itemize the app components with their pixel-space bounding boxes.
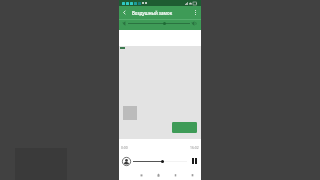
staticText: 16:02 [190,145,199,150]
button[interactable]: Account [121,156,131,166]
staticText: Воздушный замок [132,10,173,16]
button[interactable] [172,122,197,133]
button[interactable]: Back [119,7,130,18]
button[interactable]: Library [150,168,167,180]
button[interactable]: Pause [189,156,199,166]
button[interactable]: Profile [184,168,201,180]
staticText: 0:00 [121,145,128,150]
button[interactable]: Home [133,168,150,180]
button[interactable]: Search [167,168,184,180]
button[interactable]: More options [190,7,201,18]
